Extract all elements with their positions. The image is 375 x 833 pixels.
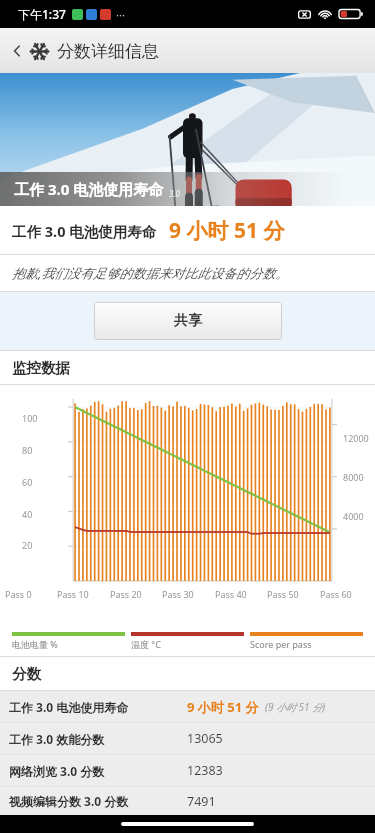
staticText: Pass 0 — [5, 588, 32, 600]
staticText: 13065 — [187, 730, 223, 747]
staticText: 温度 °C — [131, 638, 161, 650]
staticText: (9 小时 51 分) — [265, 700, 326, 714]
staticText: 共享 — [174, 312, 202, 330]
staticText: 视频编辑分数 3.0 分数 — [9, 793, 187, 809]
staticText: 40 — [22, 508, 33, 520]
staticText: 100 — [22, 412, 38, 424]
staticText: 12383 — [187, 762, 223, 779]
staticText: 3.0 — [169, 188, 180, 199]
staticText: 工作 3.0 电池使用寿命 — [9, 699, 187, 715]
staticText: 下午1:37 — [18, 6, 66, 22]
staticText: Pass 20 — [110, 588, 142, 600]
staticText: Pass 30 — [162, 588, 194, 600]
staticText: 20 — [22, 539, 33, 551]
staticText: 9 小时 51 分 — [187, 698, 259, 716]
button[interactable]: 工作 3.0 电池使用寿命 — [0, 691, 375, 722]
staticText: 60 — [22, 476, 33, 488]
staticText: Pass 40 — [215, 588, 247, 600]
staticText: 80 — [22, 444, 33, 456]
staticText: 12000 — [343, 432, 369, 444]
staticText: 网络浏览 3.0 分数 — [9, 763, 187, 779]
staticText: Pass 50 — [267, 588, 299, 600]
staticText: 工作 3.0 电池使用寿命 — [12, 221, 157, 241]
staticText: 工作 3.0 电池使用寿命 — [14, 179, 164, 199]
staticText: 工作 3.0 效能分数 — [9, 731, 187, 747]
staticText: 7491 — [187, 793, 216, 810]
staticText: 分数详细信息 — [57, 41, 159, 62]
staticText: ··· — [116, 7, 125, 22]
staticText: 电池电量 % — [12, 638, 58, 650]
button[interactable]: 共享 — [94, 302, 282, 340]
staticText: Score per pass — [250, 638, 312, 650]
staticText: 监控数据 — [12, 359, 70, 377]
staticText: 抱歉,我们没有足够的数据来对比此设备的分数。 — [12, 264, 289, 282]
button[interactable]: Back — [4, 38, 30, 64]
staticText: Pass 10 — [57, 588, 89, 600]
staticText: 9 小时 51 分 — [169, 216, 285, 245]
button[interactable]: 网络浏览 3.0 分数 — [0, 755, 375, 786]
staticText: 分数 — [12, 665, 41, 683]
staticText: 8000 — [343, 471, 364, 483]
button[interactable]: 工作 3.0 效能分数 — [0, 723, 375, 754]
staticText: 4000 — [343, 510, 364, 522]
button[interactable]: 视频编辑分数 3.0 分数 — [0, 787, 375, 815]
staticText: Pass 60 — [320, 588, 352, 600]
